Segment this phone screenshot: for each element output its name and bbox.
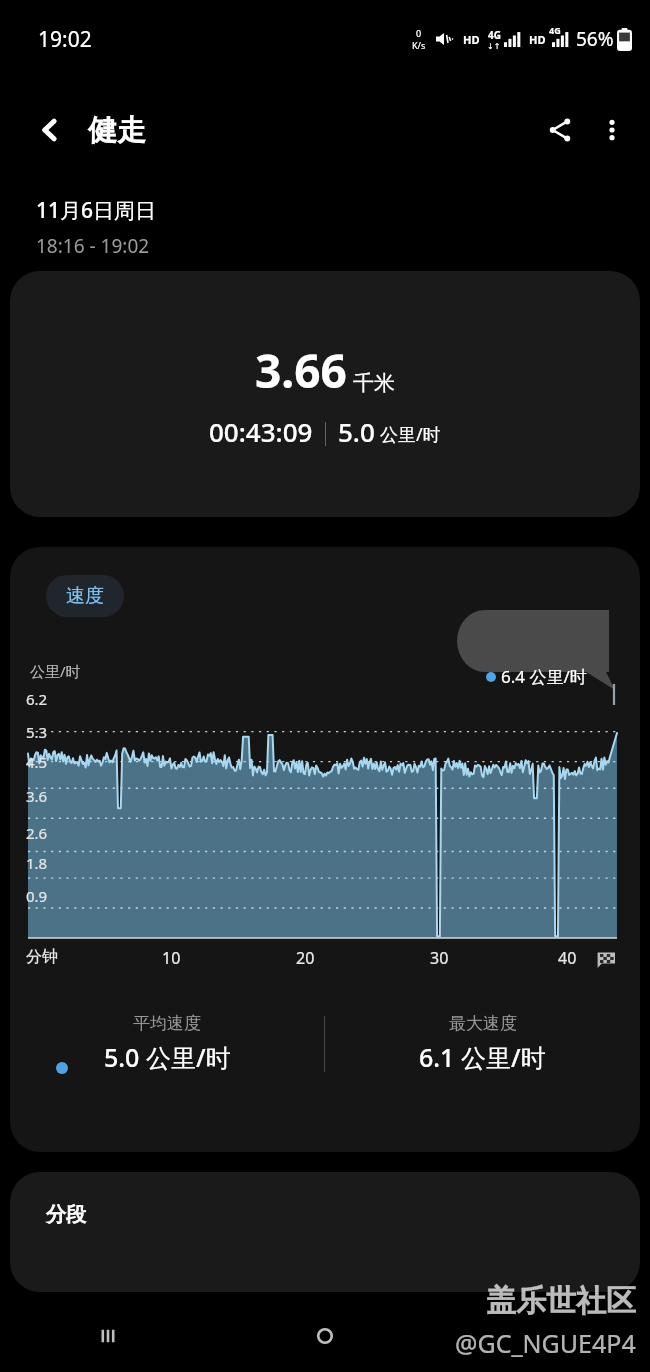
staticText: 3.6 bbox=[26, 786, 48, 806]
button[interactable]: Recent apps bbox=[0, 1300, 216, 1372]
staticText: 5.3 bbox=[26, 722, 48, 742]
staticText: 1.8 bbox=[26, 853, 48, 873]
button[interactable]: 分段 bbox=[10, 1172, 640, 1292]
staticText: 最大速度 bbox=[449, 1013, 517, 1034]
staticText: 56% bbox=[576, 26, 614, 52]
staticText: 6.2 bbox=[26, 689, 48, 709]
staticText: K/s bbox=[412, 39, 426, 51]
button[interactable]: Back bbox=[26, 106, 74, 154]
staticText: 10 bbox=[162, 947, 181, 969]
staticText: 20 bbox=[296, 947, 315, 969]
staticText: 3.66 bbox=[255, 339, 347, 402]
button[interactable]: 速度 bbox=[46, 575, 124, 617]
staticText: 19:02 bbox=[38, 25, 92, 54]
staticText: 健走 bbox=[88, 112, 146, 149]
staticText: 5.0 公里/时 bbox=[104, 1040, 231, 1074]
staticText: 平均速度 bbox=[133, 1013, 201, 1034]
staticText: 6.1 公里/时 bbox=[419, 1040, 546, 1074]
staticText: 速度 bbox=[66, 584, 104, 608]
staticText: 00:43:09 bbox=[209, 414, 313, 449]
staticText: 40 bbox=[558, 947, 577, 969]
staticText: @GC_NGUE4P4 bbox=[455, 1326, 636, 1360]
staticText: 千米 bbox=[353, 370, 395, 396]
staticText: 30 bbox=[430, 947, 449, 969]
staticText: 11月6日周日 bbox=[36, 196, 157, 225]
button[interactable]: More options bbox=[586, 104, 638, 156]
staticText: 0.9 bbox=[26, 886, 48, 906]
staticText: 5.0 bbox=[338, 414, 375, 449]
staticText: 盖乐世社区 bbox=[486, 1282, 636, 1320]
staticText: 4.5 bbox=[26, 752, 48, 772]
button[interactable]: Back bbox=[433, 1300, 650, 1372]
staticText: HD bbox=[529, 32, 546, 47]
button[interactable]: 3.66 bbox=[10, 271, 640, 517]
staticText: 分段 bbox=[46, 1202, 86, 1227]
staticText: 18:16 - 19:02 bbox=[36, 233, 150, 259]
staticText: HD bbox=[463, 32, 480, 47]
button[interactable]: Home bbox=[216, 1300, 433, 1372]
staticText: 公里/时 bbox=[380, 422, 441, 447]
button[interactable]: Share bbox=[534, 104, 586, 156]
staticText: 4G bbox=[488, 28, 501, 42]
staticText: 4G bbox=[549, 24, 561, 36]
staticText: ↓↑ bbox=[487, 42, 501, 51]
staticText: 公里/时 bbox=[30, 661, 81, 681]
staticText: 2.6 bbox=[26, 823, 48, 843]
staticText: 0 bbox=[416, 27, 422, 39]
staticText: 6.4 公里/时 bbox=[501, 665, 587, 688]
staticText: 分钟 bbox=[26, 947, 58, 967]
